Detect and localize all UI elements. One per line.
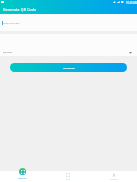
staticText: Generate bbox=[18, 177, 27, 180]
staticText: Scan bbox=[66, 178, 71, 181]
button[interactable]: Scan bbox=[45, 168, 91, 182]
button[interactable]: GENERATE bbox=[10, 63, 127, 72]
button[interactable]: Account bbox=[91, 168, 137, 182]
button[interactable]: Enter Your Text bbox=[0, 14, 137, 31]
staticText: QR Code bbox=[3, 51, 12, 54]
staticText: Enter Your Text bbox=[3, 22, 20, 25]
other: Notification bbox=[1, 1, 4, 3]
staticText: GENERATE bbox=[63, 66, 75, 69]
staticText: Account bbox=[110, 178, 118, 181]
staticText: Generate QR Code bbox=[3, 7, 37, 12]
button[interactable]: QR Code bbox=[0, 34, 137, 56]
staticText: 10:30 AM bbox=[126, 1, 137, 5]
button[interactable]: Generate bbox=[0, 168, 45, 182]
